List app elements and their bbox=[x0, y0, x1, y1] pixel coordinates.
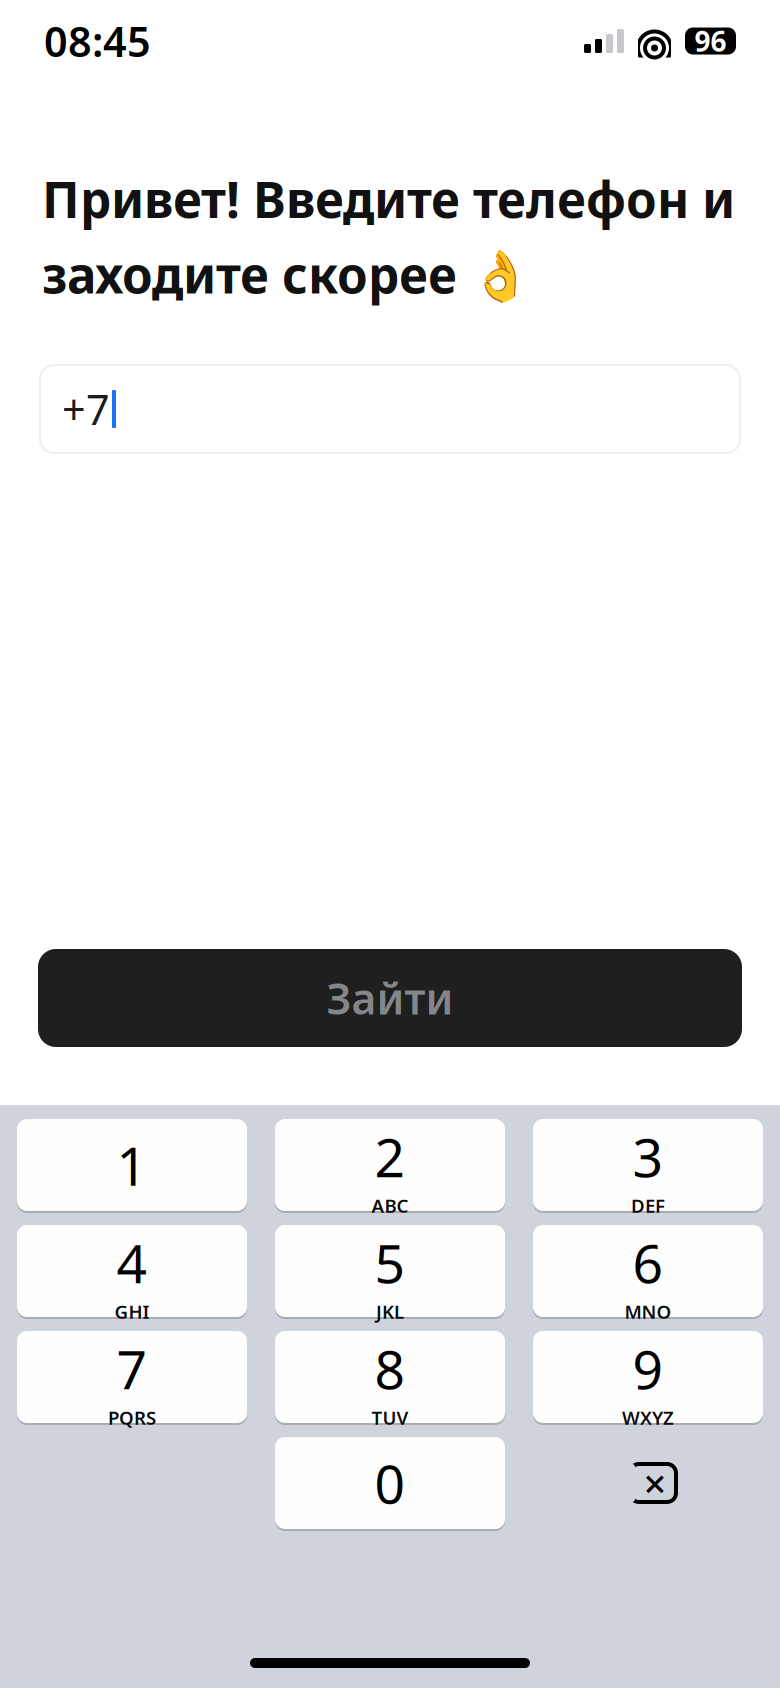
staticText: Привет! Введите телефон и bbox=[42, 166, 735, 231]
button[interactable]: 5 bbox=[275, 1224, 505, 1318]
staticText: 3 bbox=[632, 1121, 663, 1192]
staticText: 0 bbox=[374, 1448, 405, 1518]
staticText: GHI bbox=[114, 1299, 149, 1324]
button[interactable]: Зайти bbox=[38, 949, 742, 1047]
staticText: ABC bbox=[371, 1193, 408, 1218]
staticText: JKL bbox=[376, 1299, 404, 1324]
staticText: 5 bbox=[374, 1227, 405, 1298]
staticText: 96 bbox=[694, 22, 726, 60]
staticText: Зайти bbox=[326, 970, 453, 1026]
button[interactable]: 4 bbox=[17, 1224, 247, 1318]
button[interactable]: Delete bbox=[528, 1436, 768, 1530]
button[interactable]: 0 bbox=[275, 1436, 505, 1530]
staticText: TUV bbox=[371, 1405, 408, 1430]
staticText: 1 bbox=[116, 1130, 147, 1200]
staticText: PQRS bbox=[108, 1405, 156, 1430]
staticText: 2 bbox=[374, 1121, 405, 1192]
staticText: 9 bbox=[632, 1333, 663, 1404]
staticText: 08:45 bbox=[44, 14, 151, 68]
staticText: 8 bbox=[374, 1333, 405, 1404]
button[interactable]: 7 bbox=[17, 1330, 247, 1424]
staticText: заходите скорее 👌 bbox=[42, 241, 531, 307]
staticText: WXYZ bbox=[622, 1405, 674, 1430]
button[interactable]: 1 bbox=[17, 1118, 247, 1212]
staticText: 4 bbox=[116, 1227, 147, 1298]
button[interactable]: 6 bbox=[533, 1224, 763, 1318]
staticText: 6 bbox=[632, 1227, 663, 1298]
staticText: +7 bbox=[62, 382, 110, 436]
button[interactable]: +7 bbox=[40, 365, 740, 453]
staticText: × bbox=[643, 1456, 666, 1509]
button[interactable]: 9 bbox=[533, 1330, 763, 1424]
staticText: MNO bbox=[624, 1299, 671, 1324]
button[interactable]: 8 bbox=[275, 1330, 505, 1424]
staticText: DEF bbox=[631, 1193, 665, 1218]
button[interactable]: 2 bbox=[275, 1118, 505, 1212]
button[interactable]: 3 bbox=[533, 1118, 763, 1212]
staticText: 7 bbox=[116, 1333, 147, 1404]
